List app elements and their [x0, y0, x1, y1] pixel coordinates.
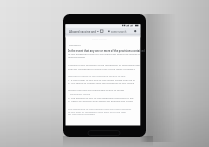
staticText: Allowed vaccine and — [69, 30, 97, 34]
staticText: In the event that any one or more of the… — [68, 49, 145, 52]
staticText: 2. Any failure to comply with the provis… — [68, 81, 135, 84]
staticText: 4. Nearly all services shall always be g… — [68, 99, 133, 102]
staticText: 1. If the holder of any one of the share… — [68, 78, 135, 81]
staticText: secondary clause — [70, 92, 91, 95]
staticText: of any item or obligation shall pass on … — [68, 110, 126, 113]
staticText: referred to above in the preceding secti… — [68, 74, 126, 77]
staticText: The ownership of the interests and any o… — [68, 107, 132, 110]
staticText: some search — [111, 30, 127, 34]
staticText: for the notice provided — [68, 112, 95, 115]
staticText: some header — [92, 37, 107, 40]
staticText: in this agreement shall for any reason b… — [68, 52, 141, 55]
staticText: 3. The disposal of any of the obligation… — [68, 96, 134, 99]
staticText: CONTENTS — [69, 44, 81, 47]
staticText: shall be considered to restrict any of t… — [68, 67, 135, 70]
staticText: Nothing in any provision of the declarat… — [68, 63, 140, 66]
staticText: unenforceable — [68, 55, 86, 58]
staticText: Section one and any reasonable action to… — [68, 88, 125, 91]
